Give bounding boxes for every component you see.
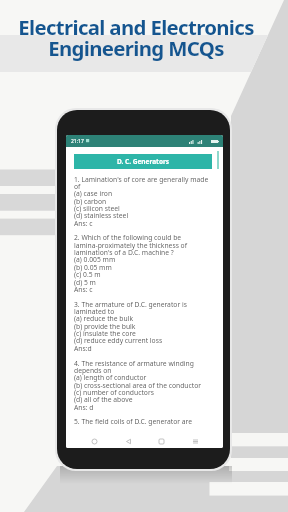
staticText: lamina-proximately the thickness of (74, 241, 188, 250)
staticText: (a) reduce the bulk (74, 314, 134, 323)
staticText: (c) silicon steel (74, 204, 120, 213)
staticText: (c) 0.5 m (74, 270, 101, 279)
button[interactable]: Menu (189, 435, 201, 447)
staticText: (d) reduce eddy current loss (74, 336, 163, 345)
staticText: laminated to (74, 307, 115, 316)
button[interactable]: Back (122, 435, 134, 447)
staticText: 21:17 (71, 138, 84, 145)
staticText: (d) 5 m (74, 278, 96, 287)
staticText: (d) all of the above (74, 395, 133, 404)
staticText: Electrical and Electronics Engineering M… (0, 13, 272, 62)
staticText: (c) number of conductors (74, 388, 154, 397)
staticText: (c) insulate the core (74, 329, 136, 338)
staticText: (b) 0.05 mm (74, 263, 112, 272)
staticText: D. C. Generators (117, 157, 170, 166)
button[interactable]: D. C. Generators (74, 154, 212, 169)
staticText: (d) stainless steel (74, 211, 129, 220)
staticText: lamination's of a D.C. machine ? (74, 248, 174, 257)
staticText: (b) carbon (74, 197, 107, 206)
button[interactable]: Recent (88, 435, 100, 447)
staticText: depends on (74, 366, 112, 375)
staticText: (a) case iron (74, 189, 113, 198)
staticText: (a) 0.005 mm (74, 255, 116, 264)
button[interactable]: Home (155, 435, 167, 447)
staticText: (b) provide the bulk (74, 322, 136, 331)
staticText: 2. Which of the following could be (74, 233, 182, 242)
staticText: of (74, 182, 81, 191)
staticText: (a) length of conductor (74, 373, 147, 382)
staticText: Ans: d (74, 403, 94, 412)
staticText: Ans:d (74, 344, 92, 353)
staticText: 1. Lamination's of core are generally ma… (74, 175, 209, 184)
staticText: Ans: c (74, 219, 93, 228)
staticText: 5. The field coils of D.C. generator are (74, 417, 193, 426)
staticText: Ans: c (74, 285, 93, 294)
staticText: 4. The resistance of armature winding (74, 359, 194, 368)
staticText: (b) cross-sectional area of the conducto… (74, 381, 202, 390)
staticText: 3. The armature of D.C. generator is (74, 300, 187, 309)
